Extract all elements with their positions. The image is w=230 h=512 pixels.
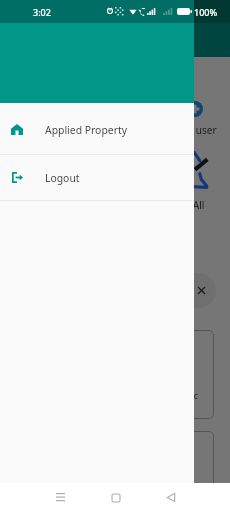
button[interactable]: Mark All [168, 150, 212, 212]
button[interactable]: Add user [166, 101, 224, 137]
button[interactable]: Residential Basic [114, 330, 214, 419]
staticText: Mark All [166, 198, 205, 212]
staticText: Logout [45, 171, 80, 185]
button[interactable]: Back [148, 483, 193, 512]
staticText: Applied Property [45, 123, 127, 137]
staticText: Add user [174, 123, 217, 137]
button[interactable]: Home [93, 483, 138, 512]
button[interactable]: Recent apps [38, 483, 83, 512]
staticText: 3:02 [33, 6, 51, 18]
button[interactable]: Close [181, 273, 216, 308]
staticText: Residential Basic [122, 389, 198, 401]
staticText: 100% [194, 6, 218, 18]
button[interactable]: Applied Property [0, 105, 194, 154]
button[interactable] [114, 431, 214, 512]
button[interactable]: Logout [0, 155, 194, 200]
